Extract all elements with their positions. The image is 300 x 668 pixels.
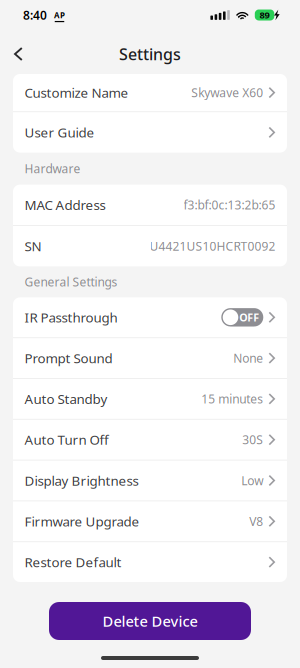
staticText: MAC Address <box>24 196 105 214</box>
staticText: f3:bf:0c:13:2b:65 <box>183 197 275 213</box>
staticText: 8:40 <box>23 7 47 23</box>
button[interactable]: Auto Standby <box>13 379 287 419</box>
button[interactable]: IR Passthrough <box>13 297 287 337</box>
staticText: Restore Default <box>24 553 121 571</box>
staticText: V8 <box>249 513 263 529</box>
staticText: Prompt Sound <box>24 349 112 367</box>
staticText: User Guide <box>24 123 94 141</box>
button[interactable]: User Guide <box>13 112 287 153</box>
button[interactable]: SN <box>13 226 287 266</box>
button[interactable]: Auto Turn Off <box>13 420 287 460</box>
staticText: AP <box>54 10 65 20</box>
staticText: OFF <box>239 310 259 324</box>
staticText: Display Brightness <box>24 472 138 489</box>
button[interactable]: Customize Name <box>13 74 287 111</box>
staticText: Auto Standby <box>24 390 107 408</box>
staticText: SN <box>24 237 41 255</box>
button[interactable]: Restore Default <box>13 542 287 582</box>
staticText: 89 <box>259 9 269 21</box>
button[interactable]: MAC Address <box>13 185 287 225</box>
staticText: Hardware <box>24 161 80 176</box>
button[interactable]: Display Brightness <box>13 461 287 500</box>
staticText: U4421US10HCRT0092 <box>149 238 275 254</box>
button[interactable]: Delete Device <box>49 602 251 640</box>
button[interactable]: Firmware Upgrade <box>13 501 287 541</box>
staticText: Delete Device <box>102 611 197 631</box>
button[interactable]: Prompt Sound <box>13 338 287 378</box>
staticText: 15 minutes <box>201 391 263 407</box>
button[interactable]: Back <box>0 30 35 74</box>
staticText: 30S <box>242 432 263 448</box>
staticText: General Settings <box>24 274 117 290</box>
staticText: Low <box>241 472 263 488</box>
staticText: Settings <box>119 43 181 65</box>
staticText: Customize Name <box>24 84 128 101</box>
staticText: Auto Turn Off <box>24 431 108 448</box>
staticText: Skywave X60 <box>191 85 263 100</box>
staticText: IR Passthrough <box>24 308 117 326</box>
staticText: Firmware Upgrade <box>24 512 139 530</box>
staticText: None <box>233 350 263 366</box>
